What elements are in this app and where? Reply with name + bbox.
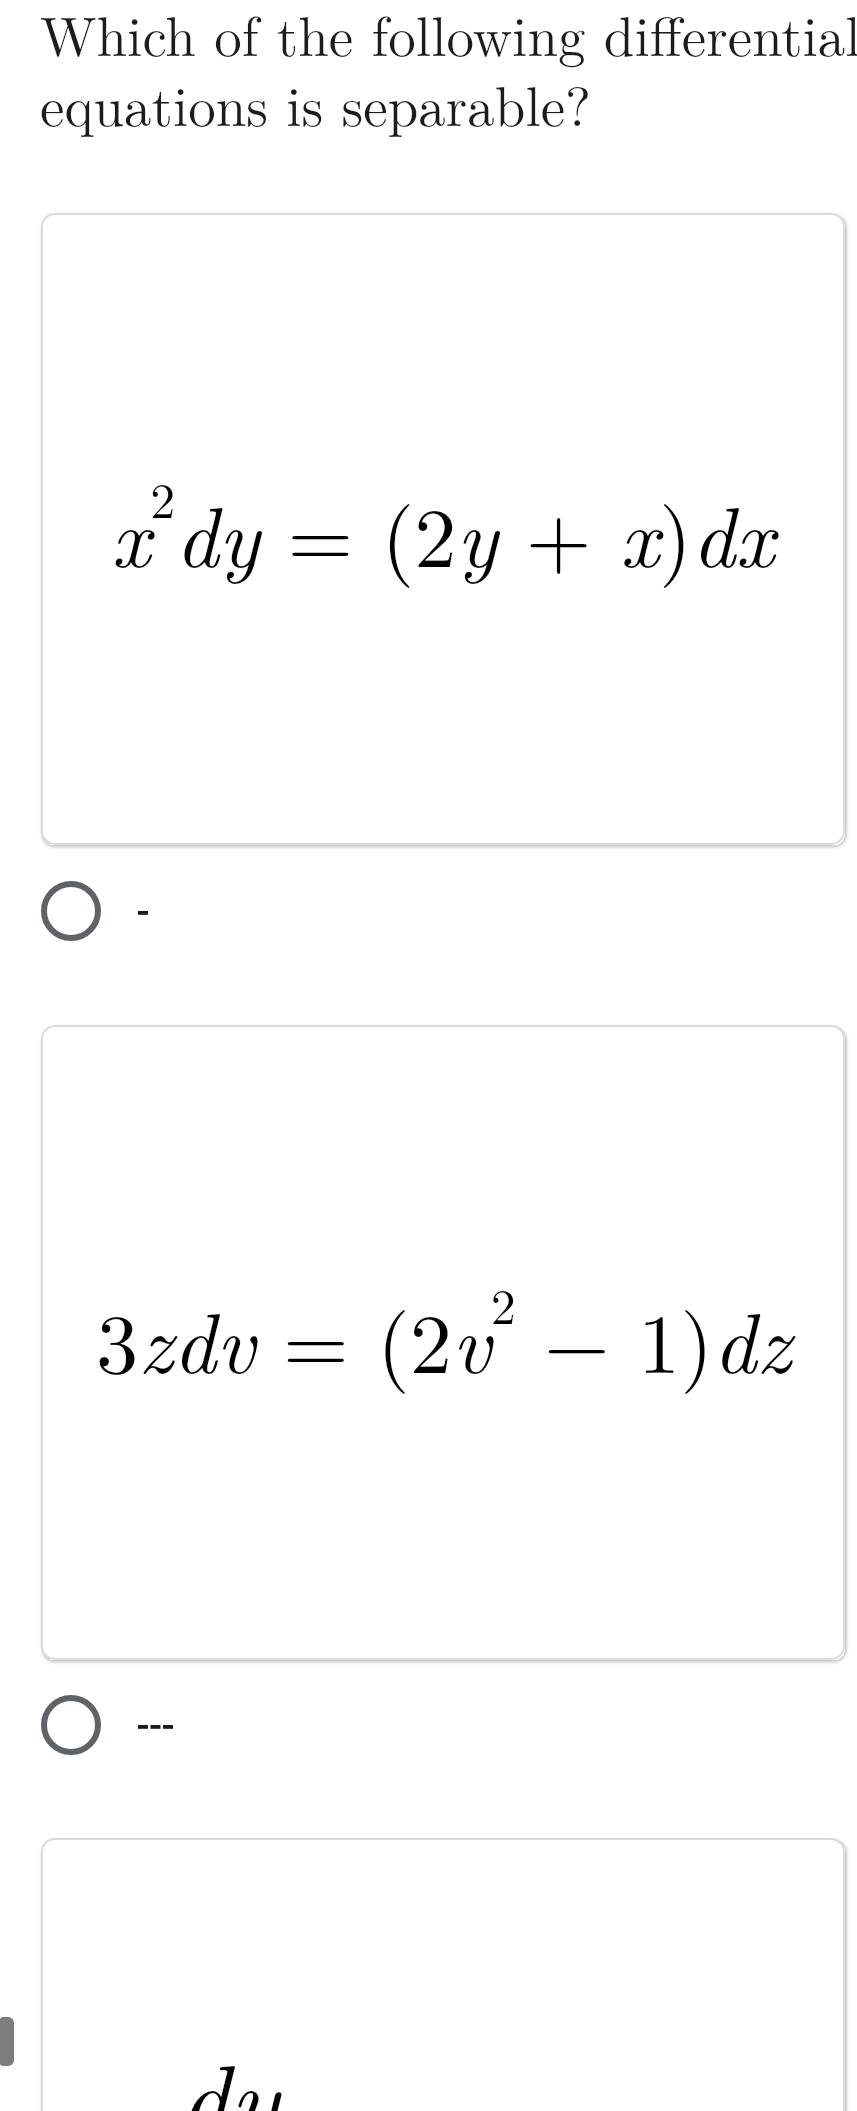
staticText: 3zdv = (2v2 − 1)dz	[96, 1268, 791, 1397]
staticText: Which of the following differential	[40, 0, 857, 72]
button[interactable]: dy	[41, 1838, 845, 2111]
button[interactable]: x2dy = (2y + x)dx	[41, 213, 845, 845]
staticText: equations is separable?	[40, 64, 592, 142]
button[interactable]	[41, 881, 172, 941]
staticText: dy	[179, 2022, 279, 2111]
button[interactable]	[41, 1695, 197, 1755]
button[interactable]: 3zdv = (2v2 − 1)dz	[41, 1025, 845, 1660]
staticText: x2dy = (2y + x)dx	[111, 462, 775, 591]
